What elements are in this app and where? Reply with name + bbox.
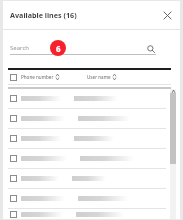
button[interactable]: Phone number xyxy=(21,70,73,84)
button[interactable]: Search xyxy=(145,43,156,54)
button[interactable]: Select xyxy=(10,95,17,102)
other: Scroll up xyxy=(170,89,176,93)
button[interactable]: Select xyxy=(10,135,17,142)
button[interactable]: Select xyxy=(3,189,180,208)
button[interactable]: Select xyxy=(3,169,180,188)
staticText: User name xyxy=(87,74,111,80)
staticText: Search xyxy=(10,44,29,52)
staticText: 6 xyxy=(56,43,61,54)
button[interactable]: Select xyxy=(10,175,17,182)
button[interactable]: Select xyxy=(3,149,180,168)
button[interactable]: Select xyxy=(10,155,17,162)
button[interactable]: Close xyxy=(160,8,174,22)
button[interactable]: Select xyxy=(3,89,180,108)
button[interactable]: Select xyxy=(3,209,180,219)
button[interactable]: Select xyxy=(10,74,17,81)
button[interactable]: Search xyxy=(10,41,156,57)
button[interactable]: Select xyxy=(3,129,180,148)
staticText: Phone number xyxy=(21,74,54,80)
staticText: Available lines (16) xyxy=(10,10,77,20)
button[interactable]: User name xyxy=(87,70,116,84)
button[interactable]: Select xyxy=(3,109,180,128)
button[interactable]: Select xyxy=(10,195,17,202)
button[interactable]: Select xyxy=(10,211,17,218)
button[interactable]: Select xyxy=(10,115,17,122)
